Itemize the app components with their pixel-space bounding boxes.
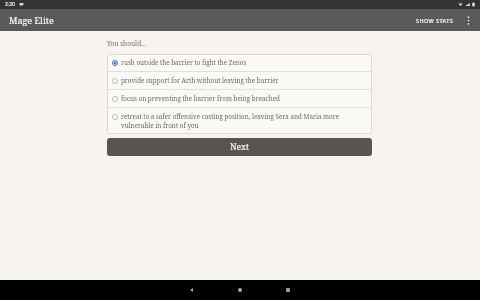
staticText: focus on preventing the barrier from bei… [121,94,367,103]
button[interactable]: Home [226,280,254,300]
staticText: 2:20 [5,1,15,8]
button[interactable]: retreat to a safer offensive casting pos… [107,108,372,134]
staticText: retreat to a safer offensive casting pos… [121,112,367,130]
staticText: provide support for Arth without leaving… [121,76,367,85]
button[interactable]: Recent apps [274,280,302,300]
staticText: You should... [107,39,146,48]
button[interactable]: More options [459,11,477,29]
button[interactable]: provide support for Arth without leaving… [107,72,372,89]
button[interactable]: SHOW STATS [411,13,459,28]
button[interactable]: focus on preventing the barrier from bei… [107,90,372,107]
staticText: SHOW STATS [416,17,454,24]
button[interactable]: Back [178,280,206,300]
button[interactable]: rush outside the barrier to fight the Ze… [107,54,372,71]
button[interactable]: Next [107,138,372,156]
staticText: rush outside the barrier to fight the Ze… [121,58,367,67]
staticText: Next [230,141,249,153]
staticText: Mage Elite [9,14,54,26]
